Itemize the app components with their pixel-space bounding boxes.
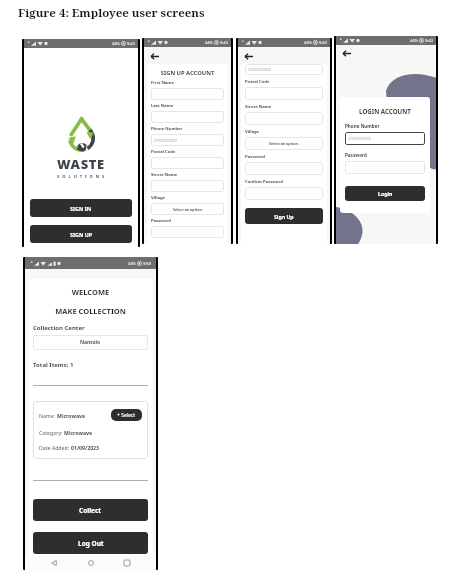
button[interactable] [151, 157, 224, 169]
button[interactable]: Back [339, 46, 353, 60]
button[interactable]: + Select [111, 409, 142, 421]
staticText: Name: [39, 412, 57, 419]
staticText: Last Name [151, 103, 174, 109]
button[interactable] [151, 226, 224, 238]
staticText: Phone Number [151, 126, 183, 132]
staticText: 01/09/2023 [71, 444, 100, 451]
staticText: Date Added: [39, 444, 71, 451]
staticText: Microwave [57, 412, 86, 419]
staticText: 27XXXXXXXXX [154, 138, 178, 143]
button[interactable]: Name: [33, 401, 148, 459]
button[interactable]: Recents [120, 556, 134, 570]
staticText: MAKE COLLECTION [33, 306, 148, 316]
staticText: Collect [79, 506, 102, 515]
staticText: SIGN IN [70, 205, 92, 212]
button[interactable] [245, 112, 323, 125]
button[interactable] [345, 161, 425, 174]
button[interactable]: Home [84, 556, 98, 570]
staticText: Postal Code [151, 149, 176, 155]
button[interactable] [151, 180, 224, 192]
staticText: SIGN UP [70, 231, 93, 238]
staticText: 9:42 [127, 41, 135, 46]
staticText: S O L U T I O N S [57, 174, 106, 180]
staticText: Login [378, 190, 393, 197]
staticText: First Name [151, 80, 174, 86]
staticText: Phone Number [345, 123, 380, 129]
button[interactable]: Back [47, 556, 61, 570]
staticText: 9:42 [319, 40, 327, 45]
staticText: LOGIN ACCOUNT [345, 107, 425, 115]
staticText: + Select [117, 412, 136, 419]
staticText: Microwave [64, 429, 93, 436]
staticText: Password [345, 152, 367, 158]
button[interactable]: Login [345, 186, 425, 201]
button[interactable] [245, 162, 323, 175]
button[interactable]: Nantolo [33, 335, 148, 350]
staticText: 43% [128, 261, 136, 266]
staticText: Confirm Password [245, 179, 283, 185]
staticText: Street Name [151, 172, 178, 178]
staticText: 44% [304, 40, 312, 45]
staticText: 44% [205, 40, 213, 45]
button[interactable]: 27XXXXXXXXX [245, 64, 323, 75]
staticText: SIGN UP ACCOUNT [151, 69, 224, 77]
button[interactable] [151, 111, 224, 123]
staticText: 9:42 [425, 38, 433, 43]
button[interactable]: 27XXXXXXXXX [151, 134, 224, 146]
staticText: Log Out [78, 539, 104, 548]
button[interactable]: Back [241, 49, 255, 63]
staticText: Collection Center [33, 324, 85, 332]
button[interactable] [245, 187, 323, 200]
button[interactable]: Select an option. [245, 137, 323, 150]
staticText: Village [151, 195, 166, 201]
staticText: 27XXXXXXXXX [348, 136, 372, 141]
button[interactable]: SIGN UP [30, 225, 132, 243]
button[interactable]: Collect [33, 499, 148, 521]
staticText: Figure 4: Employee user screens [18, 5, 205, 21]
staticText: Village [245, 129, 260, 135]
staticText: Select an option. [269, 141, 299, 146]
staticText: 44% [112, 41, 120, 46]
staticText: WELCOME [33, 287, 148, 297]
staticText: Category: [39, 429, 64, 436]
button[interactable]: Log Out [33, 532, 148, 554]
button[interactable]: Sign Up [245, 208, 323, 224]
staticText: Total Items: 1 [33, 361, 74, 369]
staticText: 27XXXXXXXXX [248, 67, 272, 72]
button[interactable]: Select an option. [151, 203, 224, 215]
staticText: Postal Code [245, 79, 270, 85]
staticText: 44% [410, 38, 418, 43]
staticText: 9:42 [220, 40, 228, 45]
button[interactable]: 27XXXXXXXXX [345, 132, 425, 145]
staticText: Sign Up [274, 213, 294, 220]
staticText: WASTE [57, 155, 105, 173]
button[interactable] [245, 87, 323, 100]
button[interactable]: SIGN IN [30, 199, 132, 217]
staticText: Nantolo [80, 339, 101, 346]
button[interactable] [151, 88, 224, 100]
staticText: Street Name [245, 104, 272, 110]
button[interactable]: Back [147, 49, 161, 63]
staticText: Password [245, 154, 265, 160]
staticText: Select an option. [173, 207, 203, 212]
staticText: Password [151, 218, 171, 224]
staticText: 9:58 [143, 261, 151, 266]
